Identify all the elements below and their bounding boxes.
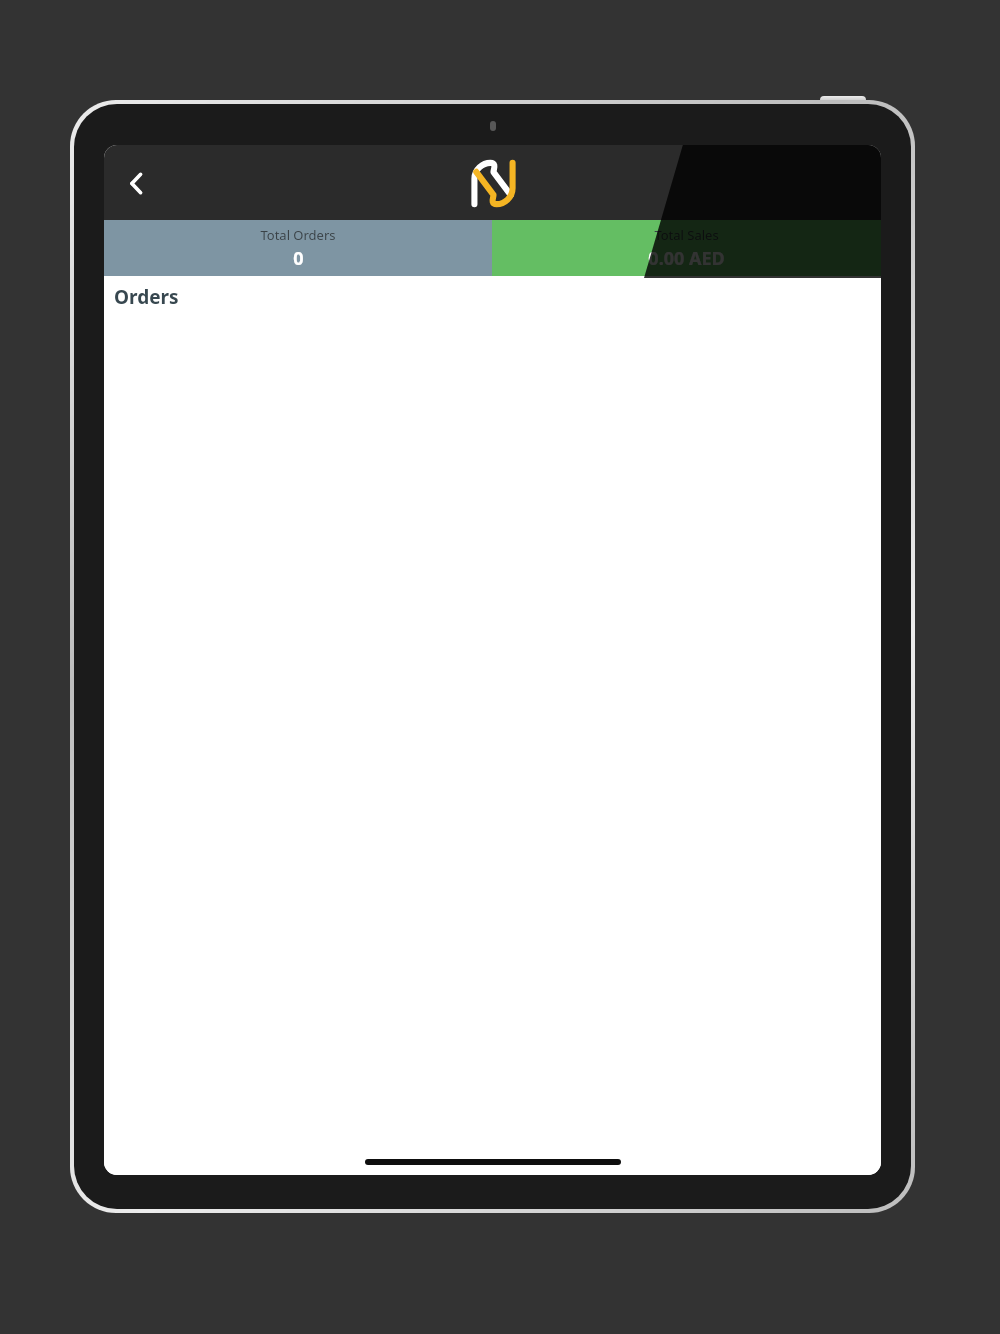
staticText: Total Sales [654,226,719,244]
staticText: Total Orders [260,226,336,244]
staticText: 0.00 AED [648,246,725,271]
button[interactable]: Total Sales [492,220,881,276]
staticText: Orders [114,284,179,310]
button[interactable]: App logo [465,155,521,211]
button[interactable]: Total Orders [104,220,492,276]
staticText: 0 [293,246,304,271]
button[interactable]: Back [109,156,163,210]
